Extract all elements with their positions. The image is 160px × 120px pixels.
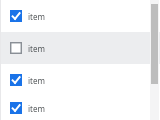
button[interactable]: Checked xyxy=(0,96,160,120)
staticText: item xyxy=(28,75,45,86)
button[interactable]: Checked xyxy=(0,64,160,96)
other: Unchecked xyxy=(10,42,22,54)
button[interactable]: Checked xyxy=(0,0,160,32)
staticText: item xyxy=(28,11,45,22)
button[interactable]: Unchecked xyxy=(0,32,160,64)
other: Checked xyxy=(10,102,22,114)
staticText: item xyxy=(28,103,45,114)
other: Checked xyxy=(10,74,22,86)
staticText: item xyxy=(28,43,45,54)
other: Checked xyxy=(10,10,22,22)
